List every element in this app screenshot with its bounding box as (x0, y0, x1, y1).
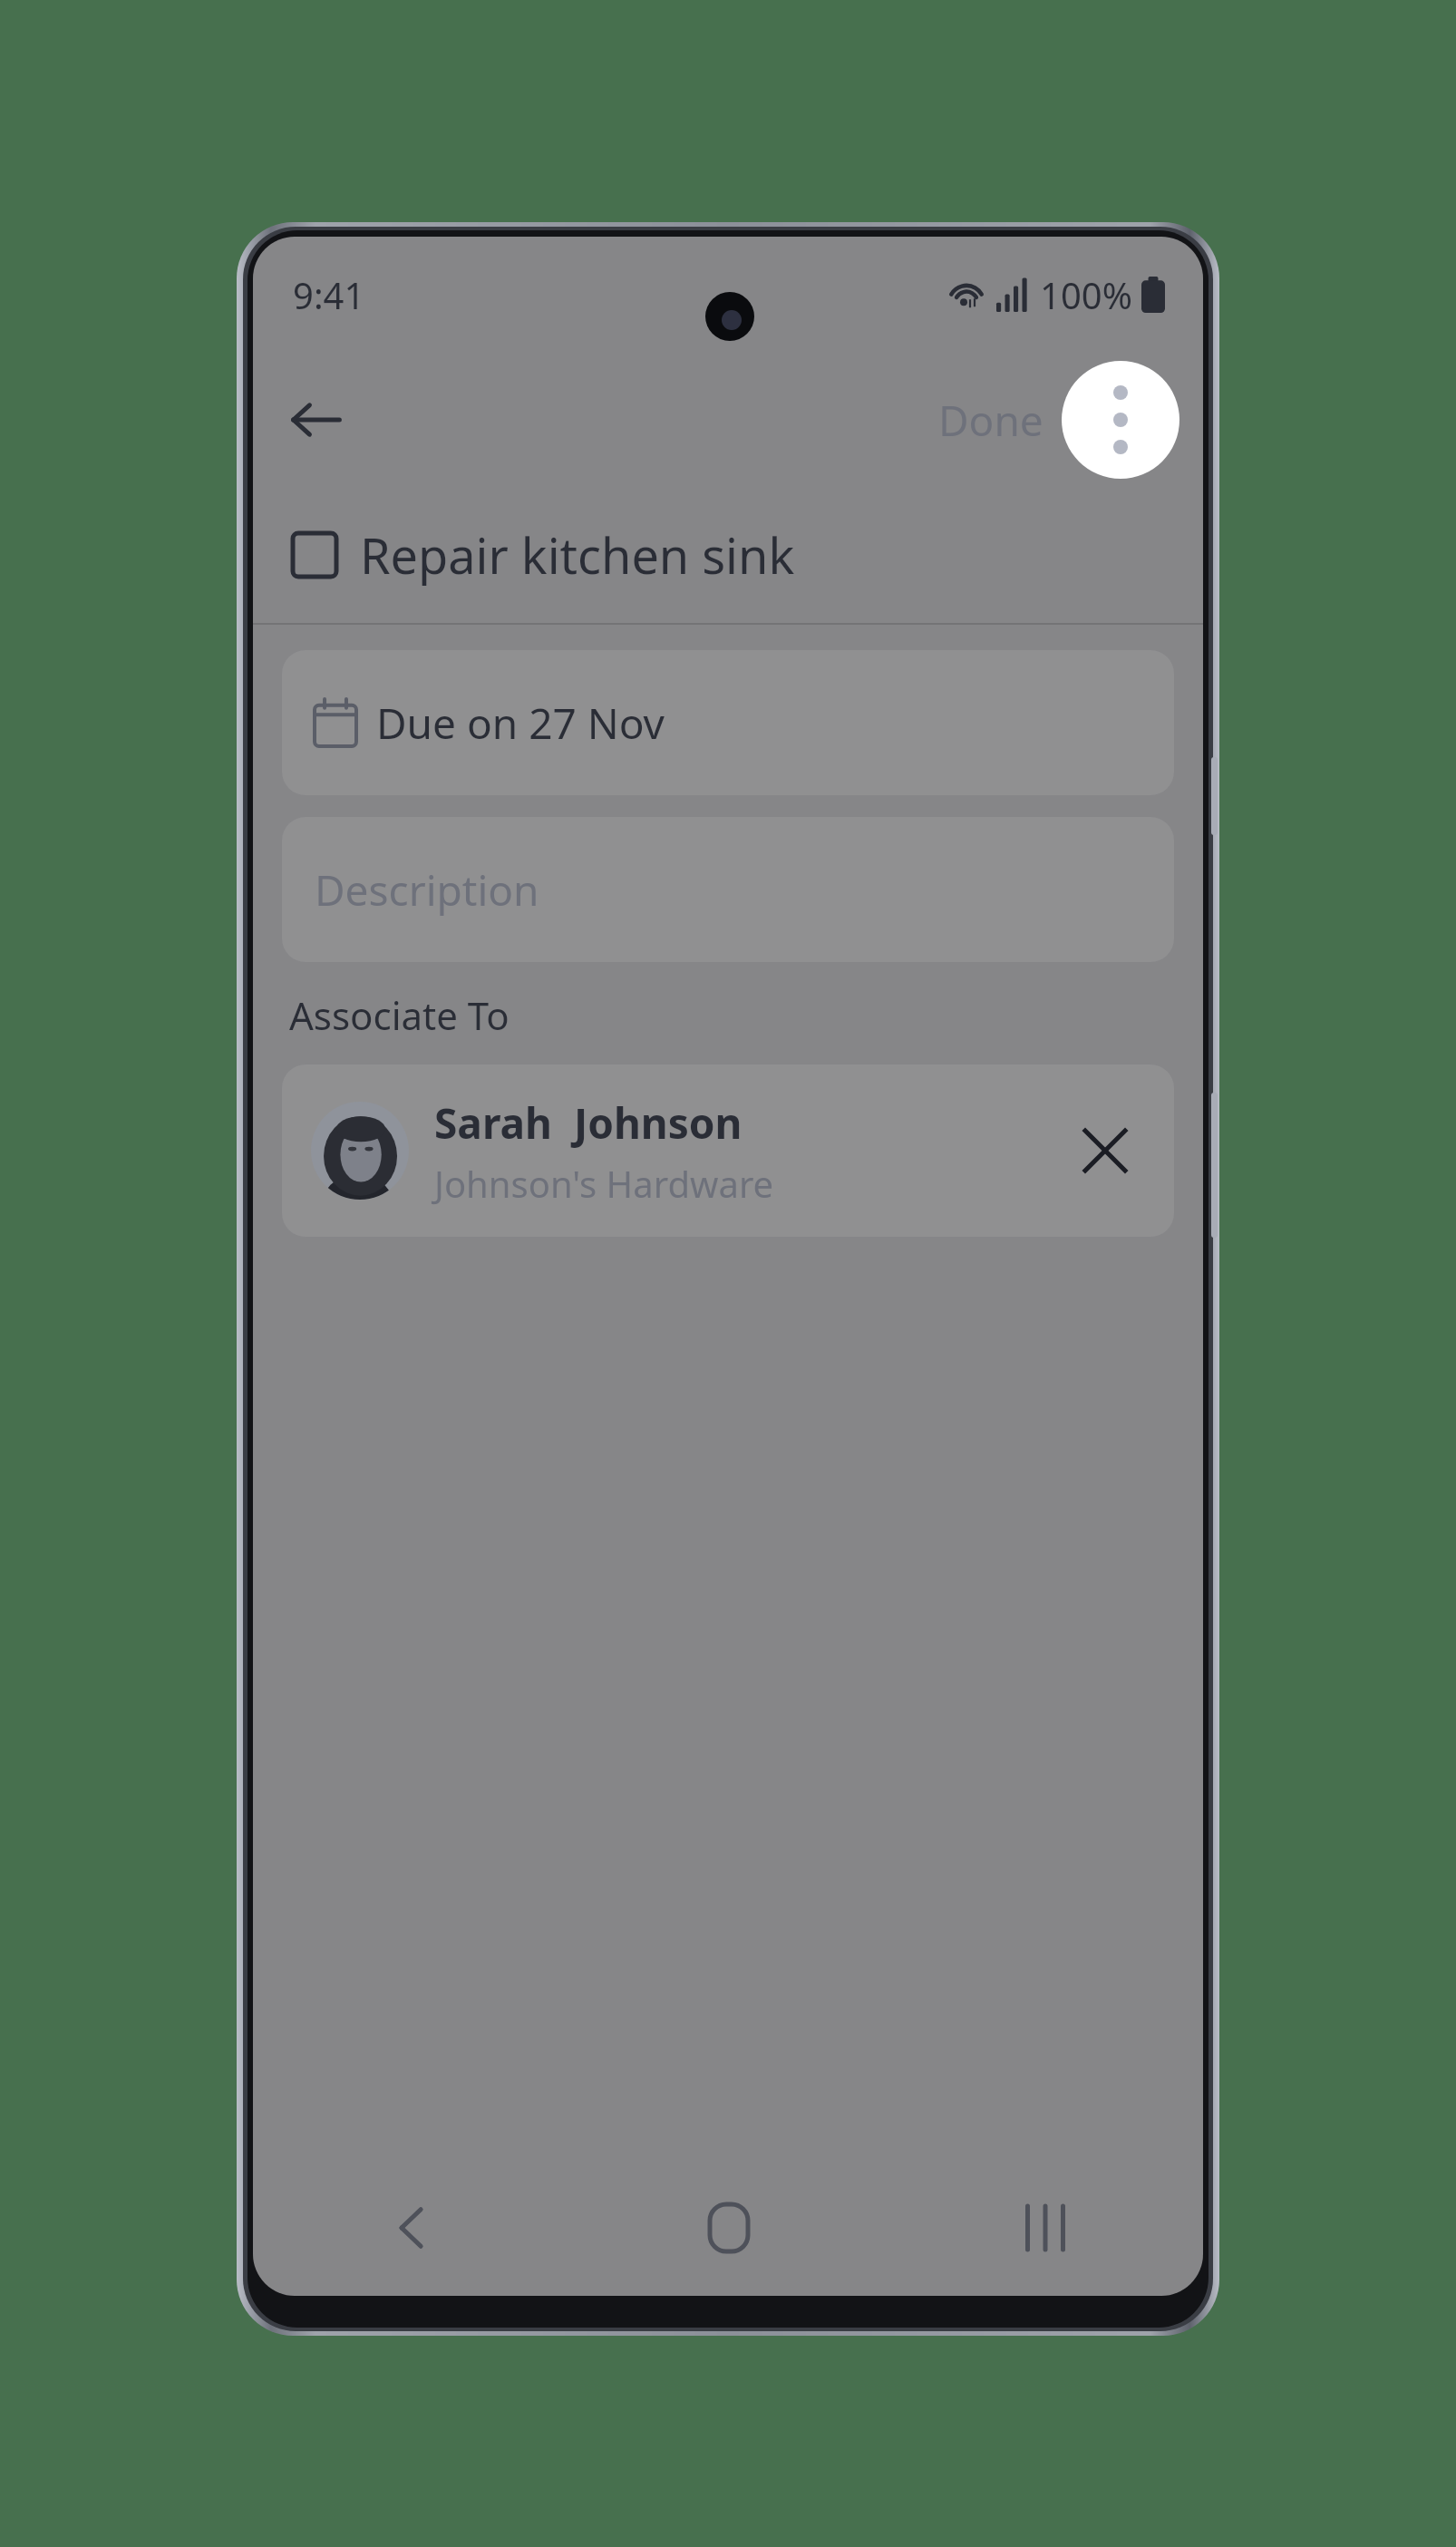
button[interactable]: Remove Sarah Johnson (1063, 1109, 1147, 1192)
staticText: Repair kitchen sink (360, 521, 795, 588)
staticText: Description (315, 861, 539, 919)
button[interactable]: Repair kitchen sink (253, 487, 1203, 623)
staticText: Johnson's Hardware (434, 1159, 774, 1208)
staticText: Associate To (289, 989, 510, 1041)
staticText: Sarah Johnson (434, 1094, 743, 1152)
staticText: 100% (1040, 270, 1132, 319)
staticText: Done (938, 392, 1043, 449)
button[interactable]: Back (273, 376, 360, 463)
button[interactable]: Recent apps (887, 2160, 1203, 2296)
button[interactable]: Sarah Johnson (282, 1064, 1174, 1237)
button[interactable]: Back (253, 2160, 570, 2296)
button[interactable]: Done (926, 381, 1056, 460)
button[interactable]: More options (1062, 361, 1179, 479)
button[interactable]: Home (570, 2160, 887, 2296)
staticText: 9:41 (293, 270, 365, 319)
button[interactable]: Description (282, 817, 1174, 962)
button[interactable]: Due on 27 Nov (282, 650, 1174, 795)
staticText: Due on 27 Nov (376, 695, 665, 752)
